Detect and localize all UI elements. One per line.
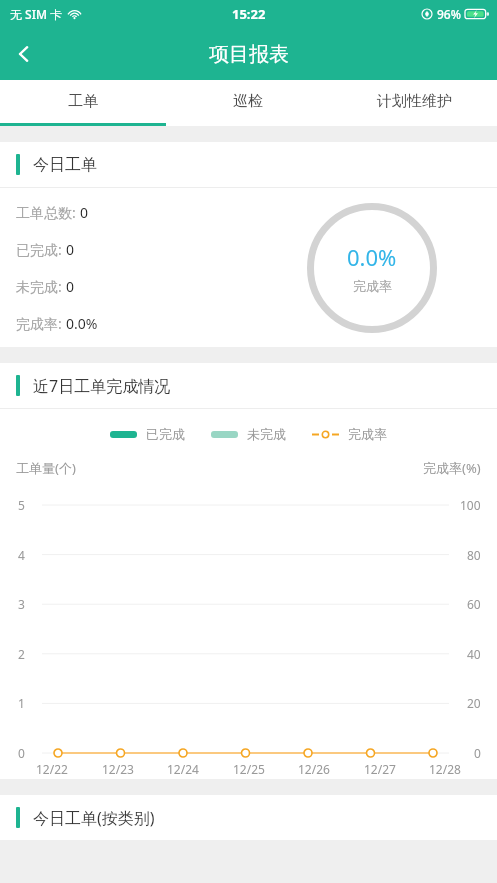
- staticText: 0.0%: [347, 242, 397, 272]
- staticText: 12/22: [36, 761, 68, 777]
- staticText: 0: [80, 203, 89, 222]
- staticText: 工单: [68, 92, 98, 111]
- staticText: 0: [66, 277, 75, 296]
- staticText: 1: [18, 695, 25, 711]
- staticText: 12/28: [429, 761, 461, 777]
- staticText: 计划性维护: [377, 92, 452, 111]
- staticText: 80: [467, 547, 481, 563]
- staticText: 已完成:: [16, 240, 66, 259]
- staticText: 20: [467, 695, 481, 711]
- staticText: 15:22: [232, 5, 266, 23]
- staticText: 完成率: [353, 278, 392, 294]
- staticText: 100: [460, 497, 481, 513]
- button[interactable]: 工单: [0, 80, 165, 123]
- staticText: 40: [467, 646, 481, 662]
- staticText: 4: [18, 547, 25, 563]
- staticText: 12/26: [298, 761, 330, 777]
- staticText: 项目报表: [209, 42, 289, 67]
- staticText: 完成率(%): [423, 459, 481, 477]
- staticText: 0.0%: [66, 314, 98, 333]
- staticText: 完成率: [348, 426, 387, 442]
- staticText: 未完成: [247, 426, 286, 442]
- staticText: 0: [66, 240, 75, 259]
- staticText: 0: [18, 745, 25, 761]
- staticText: 12/23: [102, 761, 134, 777]
- staticText: 96%: [437, 6, 461, 22]
- staticText: 已完成: [146, 426, 185, 442]
- staticText: 今日工单: [33, 155, 97, 175]
- staticText: 5: [18, 497, 25, 513]
- staticText: 12/24: [167, 761, 199, 777]
- staticText: 未完成:: [16, 277, 66, 296]
- staticText: 3: [18, 596, 25, 612]
- staticText: 60: [467, 596, 481, 612]
- staticText: 工单量(个): [16, 459, 76, 477]
- button[interactable]: 计划性维护: [331, 80, 497, 123]
- button[interactable]: Back: [0, 30, 48, 78]
- button[interactable]: 巡检: [165, 80, 331, 123]
- staticText: 完成率:: [16, 314, 66, 333]
- staticText: 2: [18, 646, 25, 662]
- staticText: 工单总数:: [16, 203, 80, 222]
- staticText: 12/27: [364, 761, 396, 777]
- staticText: 0: [474, 745, 481, 761]
- staticText: 今日工单(按类别): [33, 807, 155, 829]
- staticText: 12/25: [233, 761, 265, 777]
- staticText: 近7日工单完成情况: [33, 375, 171, 397]
- staticText: 巡检: [233, 92, 263, 111]
- staticText: 无 SIM 卡: [10, 6, 63, 22]
